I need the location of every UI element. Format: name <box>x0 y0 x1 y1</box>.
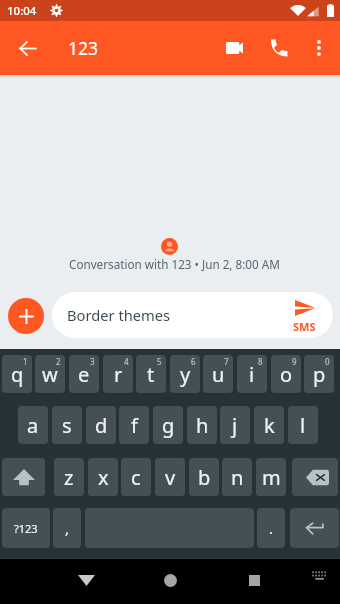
button[interactable]: Call <box>258 27 300 69</box>
staticText: s <box>62 412 72 439</box>
staticText: j <box>232 412 238 439</box>
staticText: 0 <box>325 356 330 367</box>
staticText: z <box>64 464 74 491</box>
button[interactable]: l <box>288 406 318 444</box>
button[interactable]: More options <box>301 30 337 66</box>
button[interactable]: n <box>222 458 252 496</box>
staticText: n <box>231 464 244 491</box>
staticText: 6 <box>191 356 196 367</box>
staticText: t <box>147 361 155 388</box>
button[interactable]: d <box>86 406 116 444</box>
button[interactable]: Enter <box>290 508 339 548</box>
staticText: 3 <box>90 356 95 367</box>
staticText: m <box>262 464 281 491</box>
button[interactable]: Border themes <box>52 292 333 338</box>
button[interactable]: t <box>136 355 166 393</box>
button[interactable]: Switch keyboard <box>303 560 335 592</box>
button[interactable]: h <box>187 406 217 444</box>
staticText: c <box>131 464 141 491</box>
button[interactable]: w <box>35 355 65 393</box>
button[interactable]: Hide keyboard <box>66 560 106 600</box>
button[interactable]: j <box>220 406 250 444</box>
staticText: h <box>196 412 209 439</box>
staticText: 10:04 <box>7 3 37 19</box>
button[interactable]: p <box>304 355 334 393</box>
button[interactable]: Add attachment <box>8 298 44 334</box>
staticText: k <box>264 412 275 439</box>
button[interactable]: x <box>88 458 118 496</box>
button[interactable]: y <box>170 355 200 393</box>
staticText: Conversation with 123 • Jun 2, 8:00 AM <box>69 256 280 272</box>
staticText: 5 <box>157 356 162 367</box>
staticText: Border themes <box>67 305 171 325</box>
button[interactable]: z <box>54 458 84 496</box>
staticText: f <box>131 412 138 439</box>
button[interactable]: r <box>103 355 133 393</box>
button[interactable]: k <box>254 406 284 444</box>
staticText: 8 <box>258 356 263 367</box>
button[interactable]: Home <box>150 560 190 600</box>
staticText: v <box>165 464 176 491</box>
staticText: w <box>42 361 58 388</box>
button[interactable]: Recent apps <box>234 560 274 600</box>
button[interactable]: m <box>256 458 286 496</box>
staticText: ?123 <box>14 521 38 536</box>
button[interactable]: Back <box>7 27 49 69</box>
staticText: p <box>313 361 326 388</box>
staticText: e <box>78 361 90 388</box>
staticText: b <box>198 464 211 491</box>
staticText: i <box>249 361 255 388</box>
button[interactable]: c <box>121 458 151 496</box>
staticText: 2 <box>56 356 61 367</box>
button[interactable]: u <box>203 355 233 393</box>
staticText: o <box>280 361 293 388</box>
staticText: , <box>65 518 70 538</box>
button[interactable]: Shift <box>2 458 45 496</box>
staticText: 1 <box>23 356 28 367</box>
button[interactable]: b <box>189 458 219 496</box>
button[interactable]: q <box>2 355 32 393</box>
staticText: 9 <box>292 356 297 367</box>
staticText: q <box>11 361 24 388</box>
button[interactable]: Backspace <box>292 458 338 496</box>
staticText: a <box>27 412 39 439</box>
staticText: x <box>98 464 109 491</box>
staticText: 123 <box>68 36 99 60</box>
staticText: u <box>212 361 225 388</box>
button[interactable]: , <box>53 508 81 548</box>
button[interactable]: a <box>18 406 48 444</box>
button[interactable]: g <box>153 406 183 444</box>
staticText: r <box>114 361 123 388</box>
staticText: 4 <box>124 356 129 367</box>
staticText: . <box>269 518 274 538</box>
button[interactable]: Video call <box>213 27 255 69</box>
button[interactable]: Send SMS <box>288 292 333 338</box>
staticText: SMS <box>293 319 316 334</box>
button[interactable]: ?123 <box>2 508 50 548</box>
button[interactable]: f <box>119 406 149 444</box>
button[interactable]: . <box>257 508 285 548</box>
staticText: l <box>300 412 306 439</box>
staticText: g <box>162 412 175 439</box>
button[interactable]: v <box>155 458 185 496</box>
button[interactable]: s <box>52 406 82 444</box>
button[interactable]: o <box>271 355 301 393</box>
button[interactable]: e <box>69 355 99 393</box>
staticText: d <box>95 412 108 439</box>
staticText: 7 <box>224 356 229 367</box>
button[interactable]: i <box>237 355 267 393</box>
staticText: y <box>180 361 191 388</box>
